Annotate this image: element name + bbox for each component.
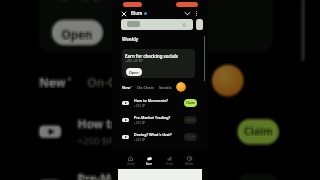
button[interactable]: New [38, 73, 70, 89]
button[interactable]: Claim [235, 120, 277, 145]
button[interactable]: On-Chain [85, 73, 139, 89]
button[interactable]: Claim [237, 173, 278, 180]
button[interactable]: Profile [211, 66, 243, 98]
button[interactable]: On-Chain [86, 73, 141, 89]
button[interactable]: Claim [235, 117, 277, 143]
button[interactable]: Earn for checking socials [40, 0, 274, 52]
button[interactable]: Socials [155, 76, 197, 92]
button[interactable]: Claim [238, 119, 280, 144]
button[interactable]: Pre-Market Trading? [37, 168, 277, 180]
button[interactable]: Pre-Market Trading? [37, 169, 277, 180]
button[interactable]: Pre-Market Trading? [37, 170, 277, 180]
button[interactable]: Earn for checking socials [38, 0, 271, 51]
button[interactable]: Socials [158, 73, 200, 89]
button[interactable]: How to Memecoin? [38, 116, 278, 148]
button[interactable]: Socials [158, 72, 200, 88]
button[interactable]: Profile [212, 66, 244, 98]
button[interactable]: Claim [237, 119, 278, 144]
button[interactable]: New [38, 76, 70, 92]
button[interactable]: Earn [143, 151, 156, 161]
button[interactable]: New [40, 74, 72, 90]
button[interactable]: Earn for checking socials [38, 0, 272, 53]
button[interactable]: Profile [213, 65, 245, 97]
button[interactable]: Profile [210, 64, 242, 96]
button[interactable]: Socials [156, 72, 198, 88]
button[interactable]: On-Chain [86, 75, 141, 91]
button[interactable]: Pre-Market Trading? [39, 170, 279, 180]
button[interactable]: Open [51, 18, 102, 44]
button[interactable]: On-Chain [87, 74, 142, 90]
button[interactable]: On-Chain [88, 72, 142, 88]
button[interactable]: Claim [238, 120, 279, 145]
button[interactable]: Earn for checking socials [38, 0, 272, 51]
button[interactable]: On-Chain [88, 73, 142, 89]
button[interactable]: Earn for checking socials [38, 0, 271, 52]
button[interactable]: New [38, 76, 70, 92]
button[interactable]: How to Memecoin? [40, 117, 280, 149]
button[interactable]: New [38, 74, 70, 90]
button[interactable]: On-Chain [87, 76, 142, 92]
button[interactable]: How to Memecoin? [39, 115, 279, 147]
button[interactable]: Profile [213, 63, 245, 95]
button[interactable]: On-Chain [87, 72, 142, 88]
button[interactable]: New [39, 76, 71, 92]
button[interactable]: On-Chain [88, 76, 142, 92]
button[interactable]: On-Chain [85, 74, 139, 90]
button[interactable]: Pre-Market Trading? [122, 115, 197, 125]
button[interactable]: How to Memecoin? [122, 98, 197, 108]
button[interactable]: Pre-Market Trading? [38, 172, 278, 180]
button[interactable]: Open [126, 68, 142, 76]
button[interactable]: How to Memecoin? [39, 114, 279, 146]
button[interactable]: Profile [212, 64, 244, 96]
button[interactable]: Socials [156, 75, 198, 91]
button[interactable]: Open [50, 20, 101, 45]
button[interactable]: Claim [238, 173, 280, 180]
button[interactable]: Pre-Market Trading? [39, 171, 279, 180]
button[interactable]: Claim [235, 119, 277, 144]
button[interactable]: Claim [236, 117, 278, 143]
button[interactable]: On-Chain [88, 74, 142, 90]
button[interactable]: Pre-Market Trading? [39, 172, 279, 180]
button[interactable]: Claim [235, 172, 277, 180]
button[interactable]: Claim [238, 118, 280, 144]
button[interactable]: Claim [236, 120, 278, 146]
button[interactable]: Profile [210, 63, 242, 95]
button[interactable]: Claim [235, 175, 277, 180]
button[interactable]: Open [50, 21, 102, 47]
button[interactable]: Close [120, 10, 127, 17]
button[interactable]: Pre-Market Trading? [38, 172, 278, 180]
button[interactable]: Profile [210, 64, 242, 96]
button[interactable]: Pre-Market Trading? [40, 169, 280, 180]
button[interactable]: Pre-Market Trading? [40, 170, 280, 180]
button[interactable]: Pre-Market Trading? [38, 168, 278, 180]
button[interactable]: Socials [159, 85, 172, 90]
button[interactable]: Claim [238, 172, 279, 180]
button[interactable]: Claim [238, 117, 279, 143]
button[interactable]: On-Chain [86, 73, 140, 89]
button[interactable]: Earn for checking socials [38, 0, 272, 50]
button[interactable]: Open [52, 20, 103, 45]
button[interactable]: Open [53, 20, 104, 45]
button[interactable]: On-Chain [86, 72, 140, 88]
button[interactable]: Earn for checking socials [39, 0, 273, 52]
button[interactable]: How to Memecoin? [40, 116, 280, 148]
button[interactable]: Earn for checking socials [38, 0, 272, 52]
button[interactable]: Socials [158, 74, 200, 90]
button[interactable]: How to Memecoin? [37, 117, 277, 149]
button[interactable]: Profile [210, 65, 242, 97]
button[interactable]: How to Memecoin? [37, 116, 277, 148]
button[interactable]: On-Chain [85, 76, 139, 92]
button[interactable]: Open [53, 21, 104, 47]
button[interactable]: Profile [212, 65, 244, 97]
button[interactable]: Claim [238, 175, 279, 180]
button[interactable]: Socials [157, 76, 198, 92]
button[interactable]: Claim [237, 172, 278, 180]
button[interactable]: Open [52, 19, 103, 44]
button[interactable]: On-Chain [86, 75, 140, 91]
button[interactable]: Claim [236, 172, 278, 180]
button[interactable]: Open [53, 19, 104, 44]
button[interactable]: On-Chain [86, 74, 141, 90]
button[interactable]: Claim [236, 120, 278, 145]
button[interactable]: Pre-Market Trading? [38, 169, 278, 180]
button[interactable]: How to Memecoin? [39, 117, 279, 149]
